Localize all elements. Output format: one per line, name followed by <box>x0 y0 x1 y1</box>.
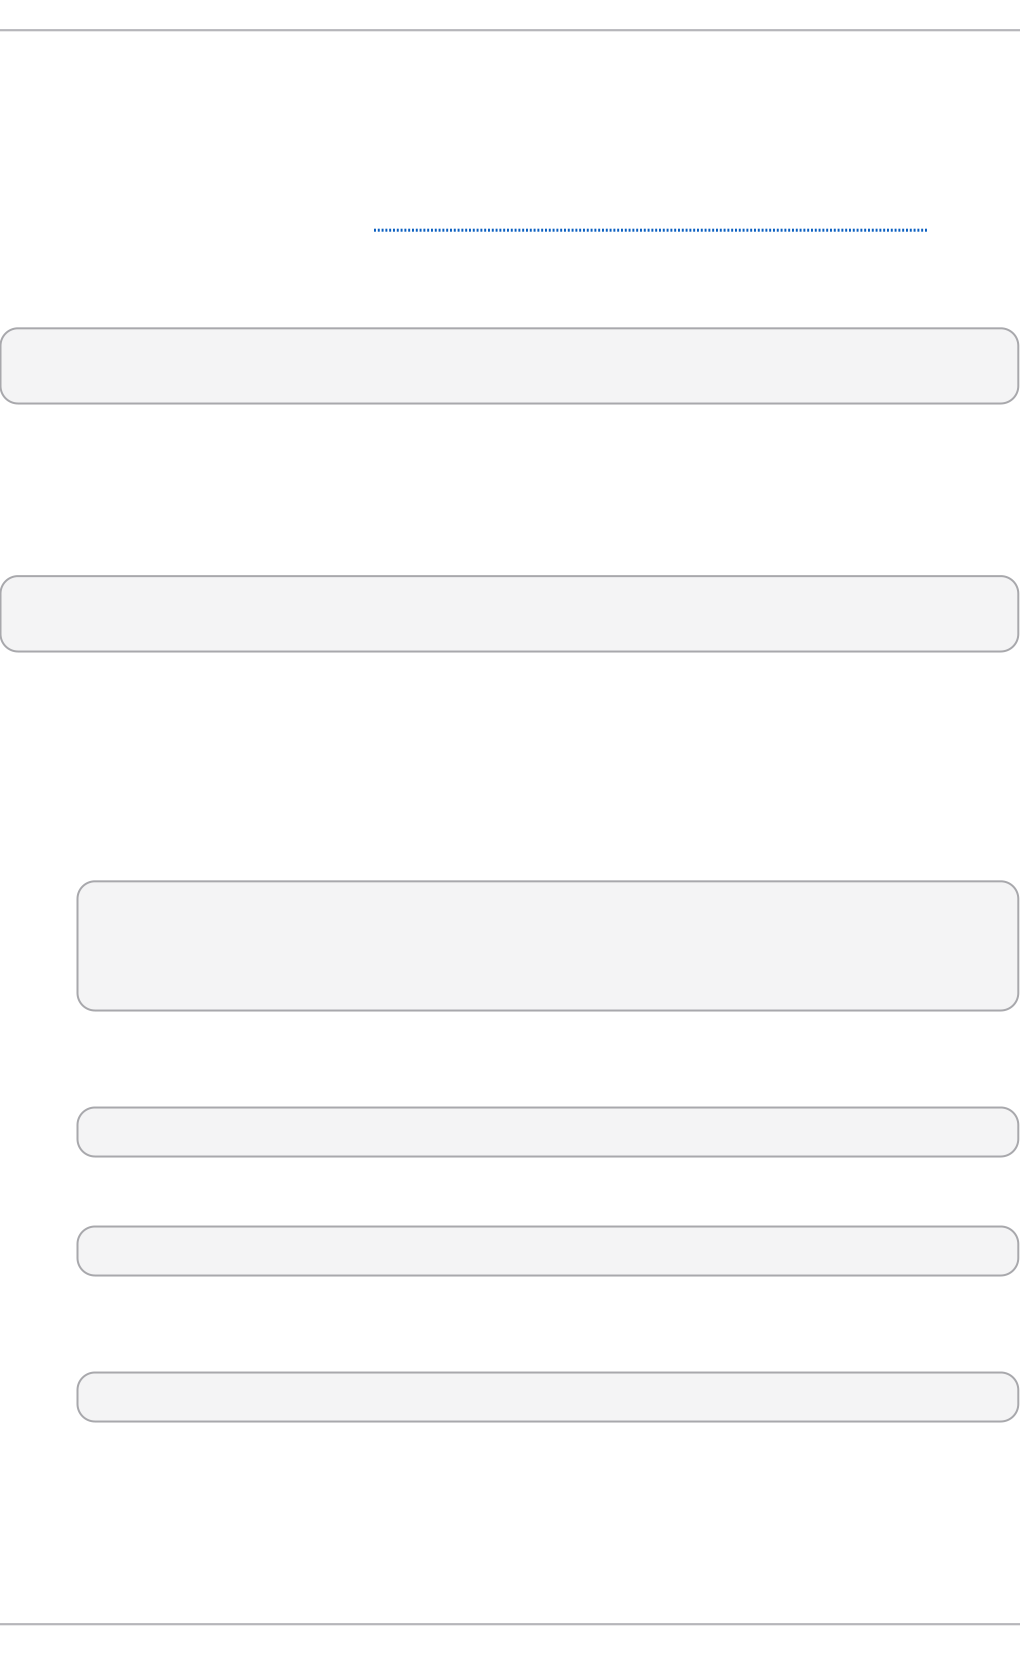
button[interactable]: Card three <box>77 881 1018 1010</box>
button[interactable]: Row two <box>77 1226 1018 1275</box>
button[interactable]: Row one <box>77 1107 1018 1156</box>
button[interactable]: Row three <box>77 1372 1018 1421</box>
button[interactable]: Card one <box>0 328 1018 403</box>
button[interactable]: Card two <box>0 576 1018 651</box>
